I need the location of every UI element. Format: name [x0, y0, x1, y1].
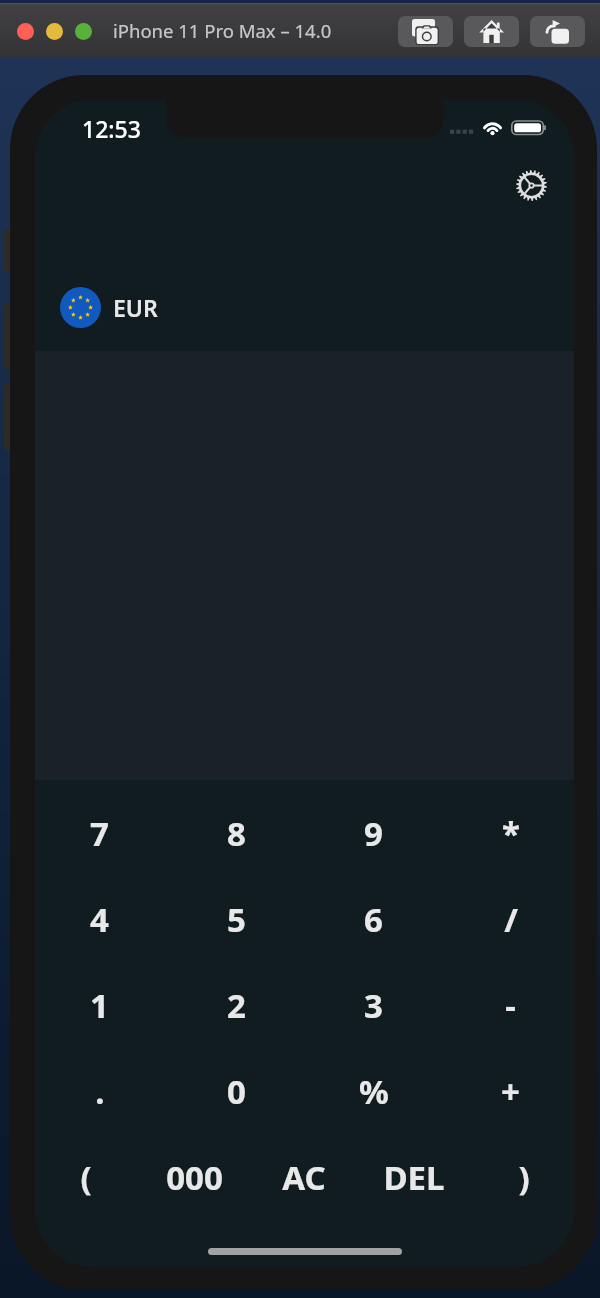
button[interactable]: 2	[168, 962, 305, 1048]
staticText: 8	[227, 811, 246, 856]
staticText: %	[359, 1069, 389, 1114]
button[interactable]: )	[469, 1134, 574, 1220]
staticText: )	[518, 1155, 530, 1200]
button[interactable]: /	[442, 876, 574, 962]
button[interactable]: Zoom	[75, 23, 92, 40]
staticText: 5	[227, 897, 246, 942]
staticText: .	[95, 1069, 105, 1114]
button[interactable]: *	[442, 790, 574, 876]
button[interactable]: Home	[464, 16, 519, 47]
button[interactable]: (	[35, 1134, 140, 1220]
staticText: 9	[364, 811, 383, 856]
staticText: iPhone 11 Pro Max – 14.0	[113, 18, 332, 43]
button[interactable]: 1	[35, 962, 168, 1048]
button[interactable]: 4	[35, 876, 168, 962]
staticText: +	[501, 1069, 520, 1114]
staticText: 7	[90, 811, 109, 856]
button[interactable]: DEL	[359, 1134, 469, 1220]
staticText: 000	[166, 1155, 223, 1200]
staticText: 0	[227, 1069, 246, 1114]
button[interactable]: AC	[249, 1134, 359, 1220]
button[interactable]: Minimize	[46, 23, 63, 40]
staticText: EUR	[113, 292, 158, 323]
staticText: 4	[90, 897, 109, 942]
button[interactable]: 3	[305, 962, 442, 1048]
staticText: 2	[227, 983, 246, 1028]
button[interactable]: Screenshot	[398, 16, 453, 47]
staticText: /	[504, 897, 518, 942]
staticText: 6	[364, 897, 383, 942]
button[interactable]: .	[35, 1048, 168, 1134]
button[interactable]: 8	[168, 790, 305, 876]
button[interactable]: %	[305, 1048, 442, 1134]
button[interactable]: 000	[140, 1134, 249, 1220]
staticText: (	[80, 1155, 92, 1200]
button[interactable]: Settings	[507, 161, 555, 209]
button[interactable]: -	[442, 962, 574, 1048]
staticText: DEL	[383, 1155, 445, 1200]
staticText: AC	[282, 1155, 326, 1200]
button[interactable]: 6	[305, 876, 442, 962]
staticText: 12:53	[82, 113, 141, 144]
button[interactable]: Rotate	[530, 16, 585, 47]
staticText: -	[505, 983, 516, 1028]
button[interactable]: 9	[305, 790, 442, 876]
button[interactable]: Close	[17, 23, 34, 40]
button[interactable]: 7	[35, 790, 168, 876]
staticText: *	[502, 811, 520, 856]
button[interactable]: +	[442, 1048, 574, 1134]
staticText: 3	[364, 983, 383, 1028]
button[interactable]: 0	[168, 1048, 305, 1134]
button[interactable]: 5	[168, 876, 305, 962]
staticText: 1	[90, 983, 109, 1028]
